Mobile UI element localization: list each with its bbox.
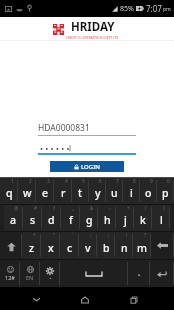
button[interactable]: LOGIN xyxy=(50,161,124,172)
staticText: s xyxy=(30,213,36,227)
staticText: w xyxy=(23,186,32,200)
staticText: : xyxy=(90,232,92,239)
button[interactable]: ) xyxy=(152,205,170,231)
staticText: - xyxy=(109,205,111,212)
staticText: EN xyxy=(26,274,34,281)
button[interactable]: ? xyxy=(133,232,151,259)
button[interactable]: Backspace xyxy=(151,232,174,259)
staticText: ! xyxy=(126,232,128,239)
button[interactable]: Back xyxy=(24,287,48,310)
staticText: i xyxy=(130,186,133,200)
button[interactable]: * xyxy=(22,232,41,259)
staticText: ; xyxy=(108,232,110,239)
button[interactable]: - xyxy=(98,205,116,231)
staticText: ' xyxy=(72,232,74,239)
staticText: 7 xyxy=(116,178,119,185)
staticText: ? xyxy=(144,232,147,239)
staticText: LOGIN xyxy=(81,163,100,171)
button[interactable]: 3 xyxy=(36,178,54,204)
staticText: b xyxy=(103,241,110,255)
staticText: v xyxy=(85,241,91,255)
staticText: 6 xyxy=(99,178,102,185)
staticText: pm xyxy=(163,6,171,13)
staticText: 12# xyxy=(5,274,15,281)
button[interactable]: ( xyxy=(134,205,152,231)
staticText: e xyxy=(42,186,49,200)
staticText: 0 xyxy=(167,178,170,185)
button[interactable]: Language xyxy=(20,260,40,287)
button[interactable]: Space xyxy=(60,260,128,287)
staticText: p xyxy=(162,186,169,200)
staticText: ₹ xyxy=(53,205,56,212)
staticText: # xyxy=(34,205,38,212)
staticText: d xyxy=(48,213,55,227)
button[interactable]: 0 xyxy=(157,178,174,204)
staticText: _ xyxy=(72,205,75,212)
button[interactable]: ' xyxy=(60,232,79,259)
staticText: HDA0000831 xyxy=(38,122,90,134)
staticText: z xyxy=(29,241,35,255)
staticText: * xyxy=(33,232,36,239)
button[interactable]: # xyxy=(23,205,42,231)
staticText: m xyxy=(137,241,147,255)
staticText: k xyxy=(140,213,146,227)
staticText: u xyxy=(111,186,118,200)
staticText: 2 xyxy=(29,178,32,185)
staticText: f xyxy=(69,213,73,227)
staticText: g xyxy=(86,213,93,227)
button[interactable]: ! xyxy=(115,232,133,259)
staticText: y xyxy=(95,186,101,200)
button[interactable]: _ xyxy=(61,205,80,231)
staticText: a xyxy=(10,213,17,227)
staticText: 5 xyxy=(82,178,85,185)
staticText: 7:07 xyxy=(146,3,162,14)
button[interactable]: 7 xyxy=(106,178,123,204)
staticText: 4 xyxy=(65,178,68,185)
button[interactable]: 6 xyxy=(89,178,106,204)
staticText: 1 xyxy=(11,178,14,185)
staticText: 85% xyxy=(120,4,134,14)
staticText: h xyxy=(104,213,111,227)
button[interactable]: ; xyxy=(97,232,115,259)
button[interactable]: ₹ xyxy=(42,205,61,231)
button[interactable]: + xyxy=(116,205,134,231)
staticText: + xyxy=(127,205,130,212)
button[interactable]: Settings xyxy=(40,260,60,287)
button[interactable]: 2 xyxy=(18,178,36,204)
staticText: CREDIT CO-OPERATIVE SOCIETY LTD xyxy=(66,36,119,40)
button[interactable]: Period xyxy=(128,260,150,287)
button[interactable]: @ xyxy=(4,205,23,231)
staticText: o xyxy=(145,186,152,200)
staticText: q xyxy=(6,186,13,200)
staticText: l xyxy=(160,213,163,227)
button[interactable]: Enter xyxy=(150,260,174,287)
button[interactable]: 5 xyxy=(72,178,89,204)
button[interactable]: 8 xyxy=(123,178,140,204)
staticText: ( xyxy=(145,205,147,212)
staticText: " xyxy=(53,232,55,239)
button[interactable]: 9 xyxy=(140,178,157,204)
button[interactable]: : xyxy=(79,232,97,259)
staticText: n xyxy=(121,241,128,255)
button[interactable]: 4 xyxy=(54,178,72,204)
staticText: ) xyxy=(163,205,165,212)
staticText: j xyxy=(124,213,127,227)
button[interactable]: Shift xyxy=(0,232,22,259)
staticText: 3 xyxy=(47,178,50,185)
staticText: HRIDAY xyxy=(71,19,115,35)
staticText: 8 xyxy=(133,178,136,185)
button[interactable]: Symbols xyxy=(0,260,20,287)
staticText: r xyxy=(61,186,66,200)
staticText: 9 xyxy=(150,178,153,185)
staticText: x xyxy=(48,241,54,255)
staticText: t xyxy=(78,186,83,200)
button[interactable]: Home xyxy=(73,287,97,310)
button[interactable]: Recents xyxy=(122,287,146,310)
staticText: c xyxy=(67,241,73,255)
button[interactable]: 1 xyxy=(0,178,18,204)
button[interactable]: & xyxy=(80,205,98,231)
staticText: @ xyxy=(14,205,19,212)
button[interactable]: " xyxy=(41,232,60,259)
staticText: & xyxy=(90,205,94,212)
